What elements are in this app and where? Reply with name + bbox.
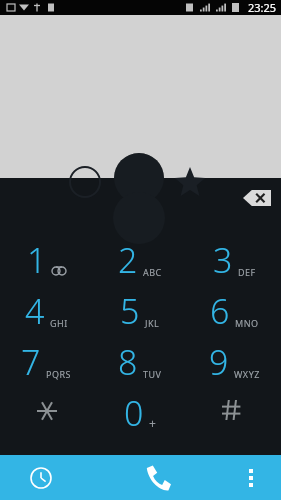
staticText: 5 — [120, 288, 140, 334]
button[interactable]: 2 — [93, 230, 187, 281]
staticText: MNO — [235, 317, 259, 329]
button[interactable]: 1 — [0, 230, 93, 281]
staticText: 3 — [213, 237, 233, 283]
staticText: 2 — [118, 237, 138, 283]
button[interactable]: 6 — [187, 281, 281, 332]
staticText: 0 — [124, 390, 144, 436]
staticText: 8 — [118, 339, 138, 385]
button[interactable]: Backspace — [236, 183, 278, 213]
staticText: PQRS — [46, 368, 72, 380]
button[interactable]: Call — [94, 455, 221, 500]
staticText: + — [149, 415, 156, 431]
button[interactable]: 9 — [187, 332, 281, 383]
staticText: JKL — [145, 317, 160, 329]
button[interactable]: Pound — [187, 383, 281, 434]
button[interactable]: 4 — [0, 281, 93, 332]
button[interactable]: More options — [221, 455, 281, 500]
staticText: WXYZ — [234, 368, 260, 380]
staticText: GHI — [50, 317, 68, 329]
staticText: 6 — [210, 288, 230, 334]
button[interactable]: 8 — [93, 332, 187, 383]
staticText: TUV — [143, 368, 162, 380]
staticText: 23:25 — [248, 0, 277, 15]
button[interactable]: 0 — [93, 383, 187, 434]
staticText: 9 — [209, 339, 229, 385]
button[interactable]: Star — [0, 383, 93, 434]
staticText: 7 — [21, 339, 41, 385]
staticText: 1 — [27, 237, 47, 283]
staticText: DEF — [238, 266, 256, 278]
staticText: 4 — [25, 288, 45, 334]
button[interactable]: Call history — [0, 455, 94, 500]
button[interactable]: 7 — [0, 332, 93, 383]
staticText: ABC — [143, 266, 162, 278]
button[interactable]: 3 — [187, 230, 281, 281]
button[interactable]: 5 — [93, 281, 187, 332]
